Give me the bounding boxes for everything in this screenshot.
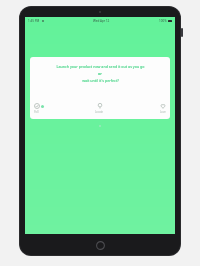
other: Love bbox=[160, 103, 166, 109]
staticText: Locate bbox=[95, 110, 104, 114]
staticText: 1:45 PM bbox=[28, 19, 40, 23]
staticText: Wed Apr 12 bbox=[93, 19, 110, 23]
staticText: Poll bbox=[34, 110, 39, 114]
button[interactable]: Love bbox=[122, 102, 167, 115]
other: Poll bbox=[34, 103, 44, 109]
staticText: wait until it's perfect? bbox=[82, 78, 119, 83]
other: Locate bbox=[97, 103, 103, 109]
button[interactable]: Poll bbox=[33, 102, 77, 115]
staticText: Launch your product now and send it out … bbox=[56, 64, 145, 69]
staticText: or bbox=[98, 71, 102, 76]
button[interactable]: Locate bbox=[77, 102, 122, 115]
button[interactable]: Launch your product now and send it out … bbox=[30, 57, 170, 119]
button[interactable]: Home bbox=[96, 241, 105, 250]
staticText: Love bbox=[160, 110, 166, 114]
staticText: 100% bbox=[159, 19, 167, 23]
